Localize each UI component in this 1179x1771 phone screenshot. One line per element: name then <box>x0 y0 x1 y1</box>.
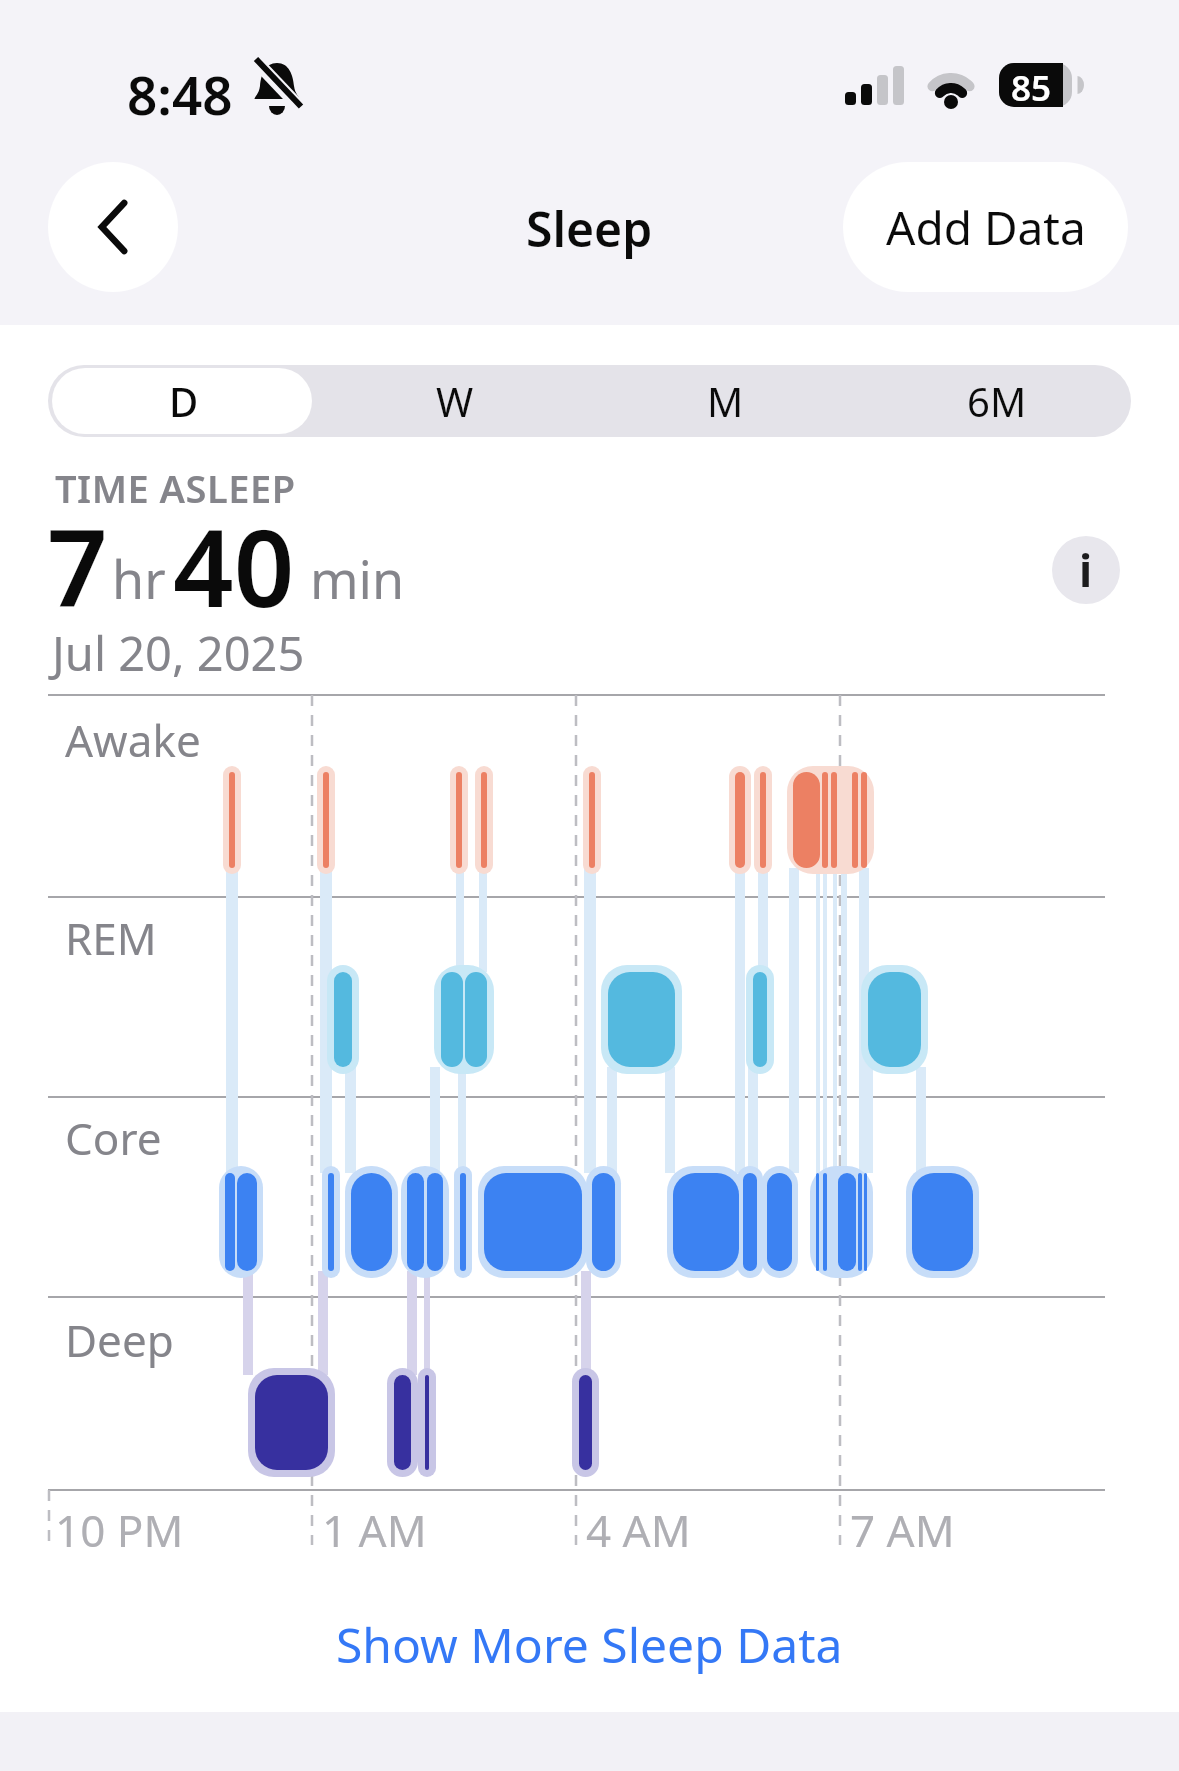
button[interactable]: 6M <box>861 365 1132 437</box>
staticText: 8:48 <box>127 58 233 130</box>
staticText: Deep <box>65 1310 174 1370</box>
staticText: 4 AM <box>586 1500 691 1560</box>
staticText: TIME ASLEEP <box>55 462 296 514</box>
staticText: Add Data <box>886 196 1086 259</box>
staticText: Core <box>65 1108 162 1168</box>
staticText: Awake <box>65 710 201 770</box>
staticText: min <box>310 543 405 614</box>
staticText: hr <box>112 543 166 614</box>
staticText: Jul 20, 2025 <box>52 621 305 685</box>
button[interactable]: M <box>590 365 861 437</box>
staticText: 7 <box>47 494 108 638</box>
button[interactable]: D <box>48 365 319 437</box>
staticText: Sleep <box>526 196 653 261</box>
staticText: 1 AM <box>322 1500 427 1560</box>
staticText: 6M <box>967 374 1027 428</box>
button[interactable]: Add Data <box>843 162 1128 292</box>
staticText: 7 AM <box>850 1500 955 1560</box>
button[interactable]: Show More Sleep Data <box>336 1612 843 1677</box>
staticText: M <box>707 374 744 428</box>
staticText: Show More Sleep Data <box>336 1612 843 1677</box>
staticText: 10 PM <box>55 1500 184 1560</box>
staticText: REM <box>65 908 157 968</box>
staticText: 40 <box>173 494 295 638</box>
button[interactable]: i <box>1052 536 1120 604</box>
button[interactable] <box>48 162 178 292</box>
button[interactable]: W <box>319 365 590 437</box>
staticText: i <box>1079 540 1093 600</box>
staticText: W <box>436 374 474 428</box>
staticText: D <box>169 374 199 428</box>
staticText: 85 <box>1011 64 1052 112</box>
